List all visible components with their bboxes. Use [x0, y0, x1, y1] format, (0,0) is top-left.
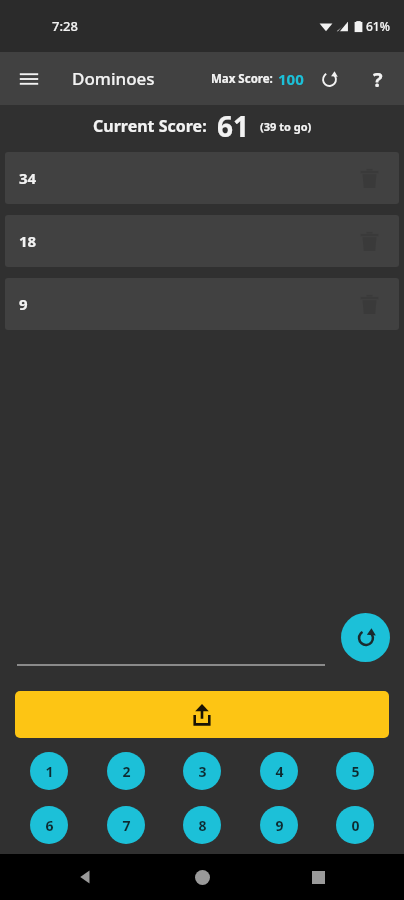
button[interactable]: 9 — [5, 278, 399, 330]
staticText: 7 — [122, 816, 131, 835]
button[interactable]: 6 — [30, 806, 68, 844]
button[interactable]: Home — [182, 857, 222, 897]
button[interactable]: Open navigation menu — [10, 60, 48, 98]
staticText: 100 — [278, 69, 304, 89]
staticText: 3 — [198, 762, 207, 781]
button[interactable]: Recent apps — [298, 857, 338, 897]
staticText: 61% — [366, 18, 390, 34]
staticText: 9 — [19, 294, 28, 314]
button[interactable]: 7 — [107, 806, 145, 844]
button[interactable]: Max Score: — [209, 63, 306, 95]
button[interactable]: Recalculate — [341, 613, 390, 662]
staticText: Current Score: — [93, 115, 207, 137]
staticText: 9 — [275, 816, 284, 835]
button[interactable]: 2 — [107, 752, 145, 790]
button[interactable]: 3 — [183, 752, 221, 790]
button[interactable]: 0 — [336, 806, 374, 844]
staticText: (39 to go) — [260, 119, 312, 134]
button[interactable]: 8 — [183, 806, 221, 844]
staticText: 2 — [122, 762, 131, 781]
staticText: Max Score: — [211, 71, 273, 87]
button[interactable]: Back — [66, 857, 106, 897]
staticText: 7:28 — [52, 17, 78, 35]
staticText: 1 — [45, 762, 54, 781]
button[interactable]: Submit score — [15, 691, 389, 738]
button[interactable]: 18 — [5, 215, 399, 267]
staticText: 18 — [19, 231, 37, 251]
staticText: 0 — [351, 816, 360, 835]
staticText: 4 — [275, 762, 284, 781]
staticText: 34 — [19, 168, 37, 188]
staticText: ? — [373, 66, 383, 93]
staticText: Dominoes — [72, 67, 155, 90]
button[interactable]: 9 — [260, 806, 298, 844]
button[interactable]: 5 — [336, 752, 374, 790]
button[interactable]: Help — [358, 59, 398, 99]
button[interactable]: 34 — [5, 152, 399, 204]
button[interactable]: 4 — [260, 752, 298, 790]
staticText: 8 — [198, 816, 207, 835]
button[interactable]: 1 — [30, 752, 68, 790]
button[interactable]: Reset max score — [310, 60, 348, 98]
staticText: 6 — [45, 816, 54, 835]
staticText: 61 — [217, 107, 250, 145]
staticText: 5 — [351, 762, 360, 781]
